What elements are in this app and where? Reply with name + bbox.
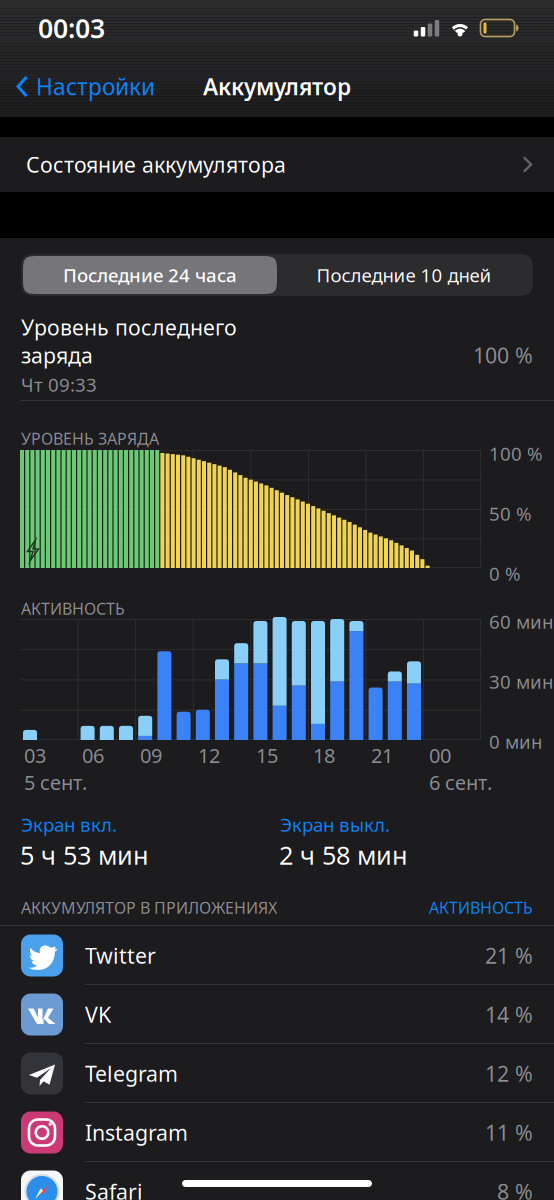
button[interactable]: VK [0, 985, 554, 1044]
staticText: Twitter [85, 941, 156, 970]
staticText: 6 сент. [429, 769, 492, 796]
staticText: АКТИВНОСТЬ [21, 598, 125, 619]
staticText: Аккумулятор [203, 71, 351, 101]
staticText: 5 ч 53 мин [20, 838, 149, 872]
staticText: Уровень последнего [21, 313, 237, 341]
staticText: Экран выкл. [280, 812, 390, 837]
staticText: 100 % [473, 341, 533, 369]
button[interactable]: Последние 24 часа [23, 256, 277, 294]
staticText: 00 [429, 742, 451, 769]
button[interactable]: Настройки [0, 62, 165, 110]
staticText: Чт 09:33 [21, 372, 97, 397]
staticText: 0 мин [489, 729, 542, 754]
staticText: Instagram [85, 1118, 188, 1147]
staticText: 100 % [489, 441, 543, 466]
staticText: 60 мин [489, 609, 553, 634]
staticText: 0 % [489, 561, 521, 586]
staticText: Настройки [36, 71, 155, 101]
button[interactable]: Safari [0, 1162, 554, 1200]
staticText: 12 % [485, 1059, 533, 1088]
staticText: 50 % [489, 501, 532, 526]
staticText: УРОВЕНЬ ЗАРЯДА [21, 428, 159, 449]
button[interactable]: Состояние аккумулятора [0, 137, 554, 192]
staticText: заряда [21, 341, 93, 369]
staticText: 09 [140, 742, 162, 769]
staticText: 14 % [485, 1000, 533, 1029]
staticText: 5 сент. [24, 769, 87, 796]
staticText: 12 [198, 742, 220, 769]
button[interactable]: Instagram [0, 1103, 554, 1162]
staticText: Safari [85, 1177, 143, 1200]
button[interactable]: Последние 10 дней [277, 256, 531, 294]
staticText: Экран вкл. [21, 812, 117, 837]
staticText: АККУМУЛЯТОР В ПРИЛОЖЕНИЯХ [21, 897, 277, 918]
button[interactable]: Twitter [0, 926, 554, 985]
staticText: Последние 24 часа [63, 263, 237, 287]
staticText: 03 [24, 742, 46, 769]
staticText: 21 % [485, 941, 533, 970]
staticText: АКТИВНОСТЬ [429, 897, 533, 918]
button[interactable]: АКТИВНОСТЬ [429, 897, 533, 918]
staticText: VK [85, 1000, 111, 1029]
staticText: Telegram [85, 1059, 178, 1088]
staticText: 15 [256, 742, 278, 769]
staticText: 8 % [497, 1177, 533, 1200]
staticText: 30 мин [489, 669, 553, 694]
staticText: 06 [82, 742, 104, 769]
staticText: 21 [371, 742, 393, 769]
button[interactable]: Telegram [0, 1044, 554, 1103]
staticText: Последние 10 дней [316, 263, 491, 287]
staticText: 11 % [485, 1118, 533, 1147]
staticText: 18 [313, 742, 335, 769]
staticText: 2 ч 58 мин [279, 838, 408, 872]
staticText: Состояние аккумулятора [26, 150, 286, 179]
staticText: 00:03 [38, 10, 105, 46]
